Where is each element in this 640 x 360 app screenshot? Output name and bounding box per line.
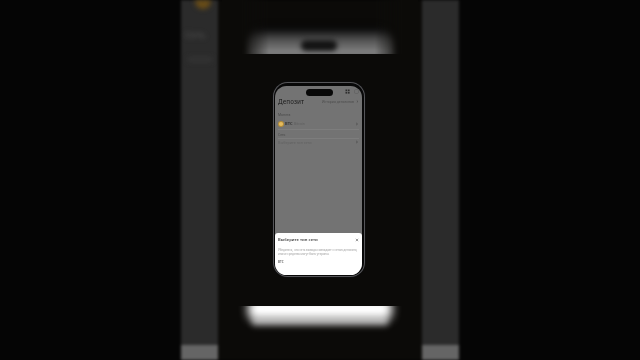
button[interactable]: Scan QR code [345,89,350,94]
button[interactable]: Close [355,238,359,242]
staticText: Выберите тип сети [278,237,318,243]
button[interactable]: BTC [275,119,362,128]
staticText: Депозит [278,97,305,105]
button[interactable]: Support chat [354,89,359,94]
button[interactable]: История депозитов [322,99,359,104]
staticText: Монета [278,112,291,117]
staticText: BTC [285,121,293,126]
staticText: Сеть [278,132,286,137]
staticText: Выберите тип сети [278,140,312,145]
staticText: BTC [278,260,284,264]
staticText: Убедитесь, что сеть вывода совпадает с с… [278,248,359,256]
staticText: Bitcoin [294,121,305,126]
button[interactable]: Выберите тип сети [275,138,362,146]
staticText: История депозитов [322,99,355,104]
